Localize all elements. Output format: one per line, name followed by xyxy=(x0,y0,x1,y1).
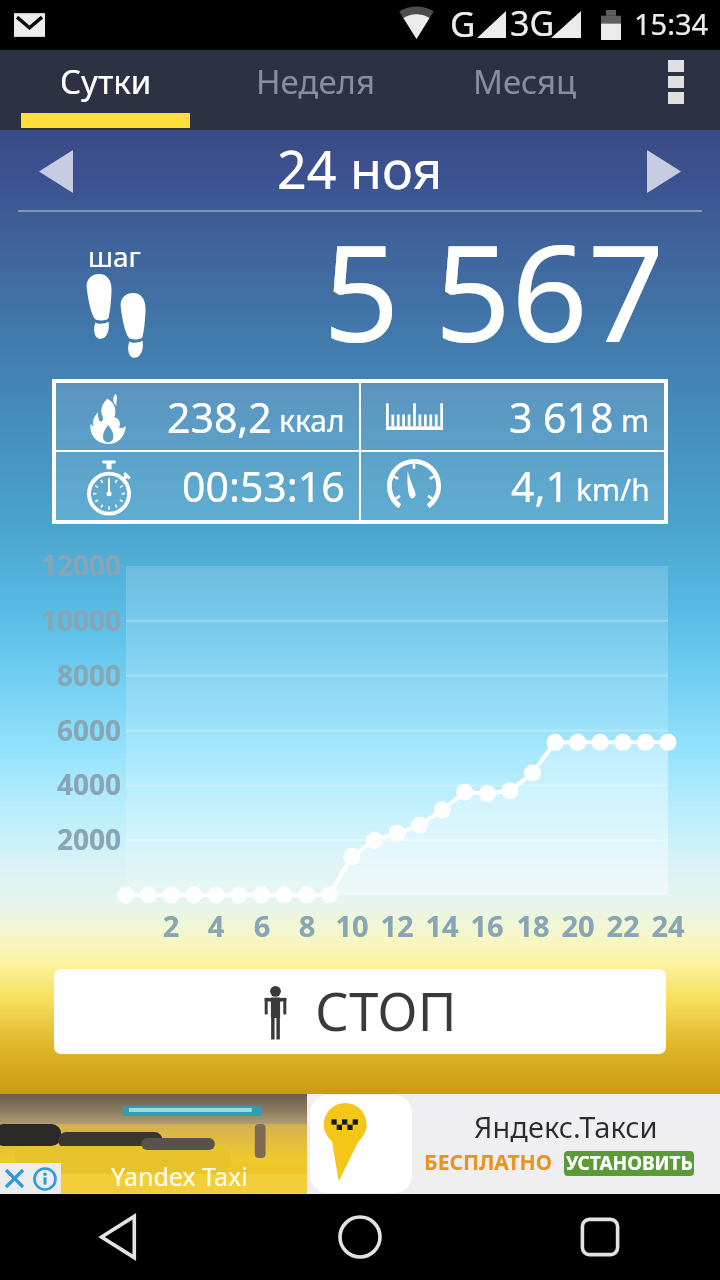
staticText: шаг xyxy=(88,237,141,275)
staticText: m xyxy=(621,400,650,441)
button[interactable]: Recent apps xyxy=(480,1194,720,1280)
staticText: Месяц xyxy=(473,59,577,104)
staticText: 238,2 xyxy=(167,389,272,445)
staticText: УСТАНОВИТЬ xyxy=(566,1151,693,1175)
button[interactable]: УСТАНОВИТЬ xyxy=(564,1151,694,1176)
staticText: 4 xyxy=(176,906,256,945)
staticText: 24 ноя xyxy=(277,133,443,204)
staticText: 2 xyxy=(131,906,211,945)
staticText: 10 xyxy=(312,906,392,945)
staticText: 12000 xyxy=(0,546,121,584)
button[interactable]: 238,2 xyxy=(56,383,359,450)
staticText: 6000 xyxy=(0,711,121,749)
staticText: 00:53:16 xyxy=(182,458,345,514)
staticText: Yandex Taxi xyxy=(111,1159,248,1193)
staticText: 18 xyxy=(493,906,573,945)
staticText: 8 xyxy=(267,906,347,945)
staticText: ккал xyxy=(279,400,345,441)
staticText: G xyxy=(450,0,476,48)
staticText: 6 xyxy=(222,906,302,945)
staticText: km/h xyxy=(576,469,650,510)
button[interactable]: Ad info xyxy=(29,1163,61,1194)
staticText: 3 618 xyxy=(509,389,614,445)
button[interactable]: More options xyxy=(631,50,720,113)
staticText: 15:34 xyxy=(634,4,709,43)
button[interactable]: Сутки xyxy=(0,50,212,113)
button[interactable]: Close ad xyxy=(0,1163,29,1194)
staticText: 16 xyxy=(447,906,527,945)
staticText: 2000 xyxy=(0,820,121,858)
button[interactable]: Previous day xyxy=(0,130,112,211)
staticText: Сутки xyxy=(60,59,152,104)
button[interactable]: 4,1 xyxy=(361,452,664,520)
button[interactable]: Неделя xyxy=(212,50,419,113)
button[interactable]: Месяц xyxy=(419,50,631,113)
staticText: Яндекс.Такси xyxy=(474,1107,658,1146)
staticText: Неделя xyxy=(256,59,375,104)
staticText: 5 567 xyxy=(323,199,665,382)
staticText: 12 xyxy=(357,906,437,945)
button[interactable]: Home xyxy=(240,1194,480,1280)
staticText: 14 xyxy=(402,906,482,945)
button[interactable]: 3 618 xyxy=(361,383,664,450)
staticText: БЕСПЛАТНО xyxy=(424,1148,553,1177)
button[interactable]: Back xyxy=(0,1194,240,1280)
staticText: 10000 xyxy=(0,601,121,639)
staticText: 3G xyxy=(510,0,555,46)
button[interactable]: Next day xyxy=(608,130,720,211)
staticText: 8000 xyxy=(0,656,121,694)
staticText: 24 xyxy=(628,906,708,945)
staticText: СТОП xyxy=(315,974,457,1046)
staticText: 4,1 xyxy=(511,458,569,514)
staticText: 4000 xyxy=(0,765,121,803)
staticText: 22 xyxy=(583,906,663,945)
staticText: 20 xyxy=(538,906,618,945)
button[interactable]: СТОП xyxy=(54,969,666,1054)
button[interactable]: 00:53:16 xyxy=(56,452,359,520)
